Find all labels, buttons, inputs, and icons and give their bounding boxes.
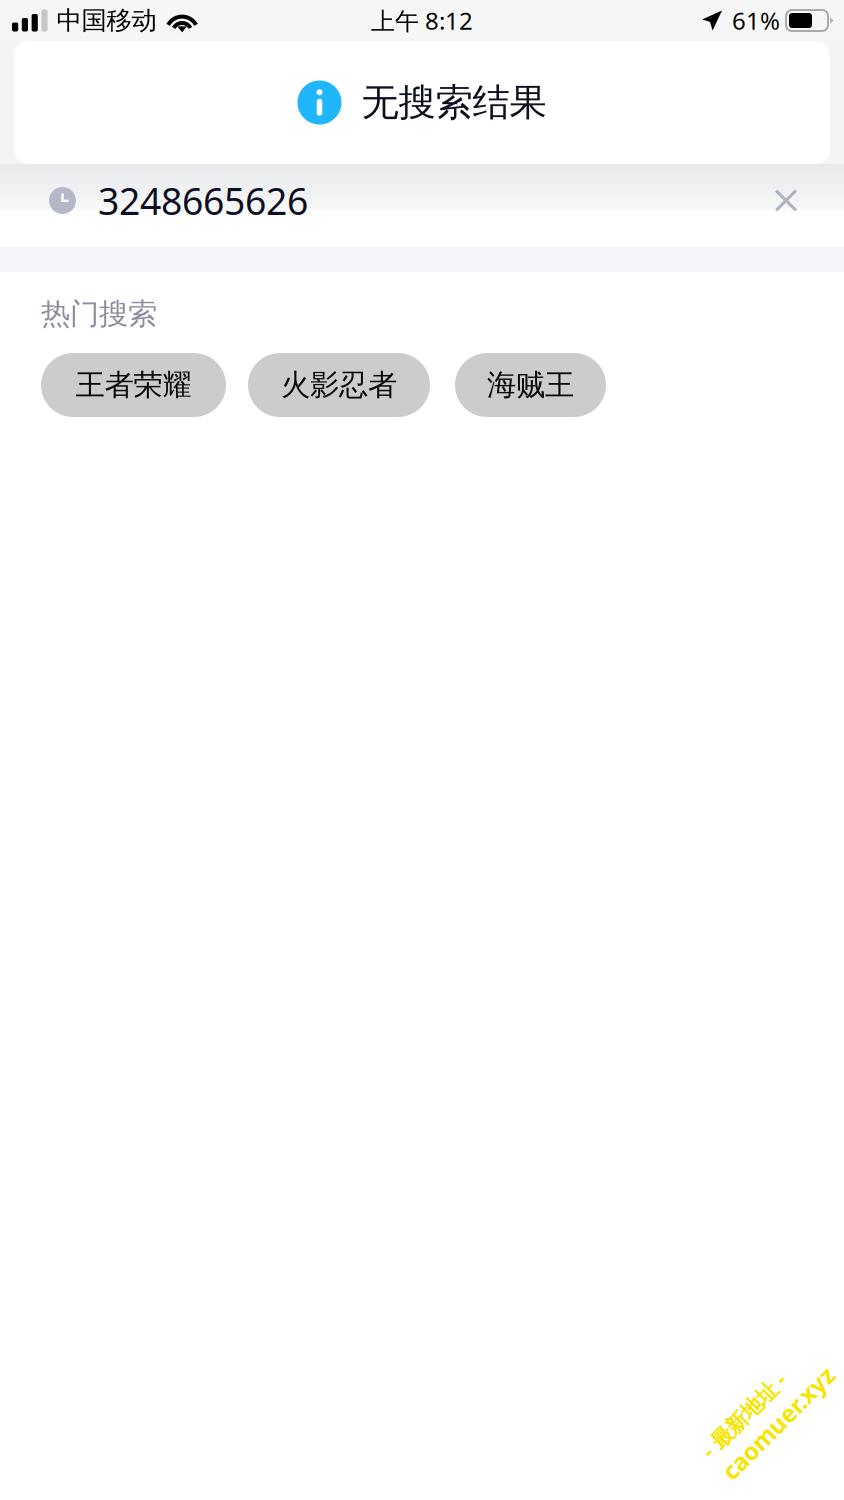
staticText: 61% (732, 5, 780, 36)
button[interactable]: 海贼王 (455, 353, 606, 417)
staticText: 海贼王 (487, 367, 574, 403)
staticText: caomuer.xyz (691, 1403, 839, 1435)
button[interactable]: 王者荣耀 (41, 353, 226, 417)
staticText: 无搜索结果 (361, 80, 546, 125)
staticText: 3248665626 (98, 176, 308, 225)
staticText: - 最新地址 - (691, 1375, 801, 1403)
staticText: 上午 8:12 (371, 5, 473, 36)
staticText: 火影忍者 (281, 367, 397, 403)
button[interactable]: 火影忍者 (248, 353, 430, 417)
button[interactable]: 3248665626 (0, 159, 742, 242)
button[interactable]: Clear (742, 159, 830, 242)
staticText: 热门搜索 (41, 296, 157, 332)
staticText: 中国移动 (57, 5, 157, 36)
staticText: 王者荣耀 (75, 367, 191, 403)
